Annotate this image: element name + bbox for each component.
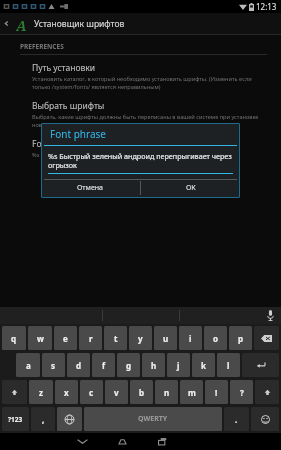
- button[interactable]: f: [92, 353, 115, 377]
- staticText: w: [37, 333, 44, 344]
- staticText: k: [201, 360, 206, 371]
- staticText: r: [89, 333, 93, 344]
- button[interactable]: Back: [0, 13, 13, 34]
- staticText: Выбрать, какие шрифты должны быть перепи…: [32, 113, 265, 129]
- staticText: z: [39, 387, 43, 398]
- staticText: c: [89, 387, 94, 398]
- button[interactable]: n: [155, 380, 178, 404]
- staticText: A: [16, 16, 27, 32]
- staticText: l: [227, 360, 230, 371]
- button[interactable]: u: [154, 326, 177, 350]
- button[interactable]: e: [54, 326, 77, 350]
- staticText: o: [213, 333, 218, 344]
- staticText: p: [238, 333, 244, 344]
- staticText: %s Быстрый зеленый андроид перепрыгивает…: [48, 151, 233, 171]
- button[interactable]: i: [179, 326, 202, 350]
- button[interactable]: Hide keyboard: [62, 433, 102, 450]
- staticText: b: [139, 387, 145, 398]
- button[interactable]: Backspace: [254, 326, 279, 350]
- staticText: e: [63, 333, 68, 344]
- button[interactable]: Отмена: [41, 180, 140, 196]
- button[interactable]: x: [55, 380, 78, 404]
- button[interactable]: Enter: [242, 353, 279, 377]
- button[interactable]: QWERTY: [84, 407, 222, 431]
- button[interactable]: z: [29, 380, 53, 404]
- staticText: QWERTY: [138, 414, 168, 424]
- button[interactable]: c: [80, 380, 103, 404]
- button[interactable]: m: [180, 380, 203, 404]
- button[interactable]: Back: [0, 13, 281, 34]
- staticText: Font phrase: [50, 127, 106, 141]
- staticText: x: [64, 387, 69, 398]
- button[interactable]: [180, 307, 281, 324]
- button[interactable]: g: [117, 353, 140, 377]
- staticText: ?123: [8, 415, 23, 424]
- staticText: Путь установки: [32, 62, 96, 74]
- staticText: m: [188, 387, 196, 398]
- staticText: y: [138, 333, 143, 344]
- staticText: %s Быстрый зеленый андроид перепрыгивает…: [32, 151, 199, 159]
- button[interactable]: r: [79, 326, 102, 350]
- staticText: Выбрать шрифты: [32, 100, 105, 112]
- button[interactable]: l: [217, 353, 240, 377]
- staticText: v: [114, 387, 119, 398]
- staticText: Font phrase: [32, 138, 80, 150]
- button[interactable]: Выбрать шрифты: [0, 99, 281, 130]
- button[interactable]: v: [105, 380, 128, 404]
- button[interactable]: Home: [102, 433, 142, 450]
- button[interactable]: o: [204, 326, 227, 350]
- staticText: u: [163, 333, 169, 344]
- staticText: j: [177, 360, 180, 371]
- button[interactable]: Font phrase: [0, 137, 281, 160]
- button[interactable]: k: [192, 353, 215, 377]
- staticText: ,: [42, 414, 45, 425]
- staticText: Установщик шрифтов: [34, 18, 125, 30]
- staticText: 12:13: [256, 1, 277, 12]
- button[interactable]: Recent apps: [142, 433, 182, 450]
- button[interactable]: d: [67, 353, 90, 377]
- staticText: h: [151, 360, 157, 371]
- staticText: ?: [240, 387, 244, 398]
- button[interactable]: w: [28, 326, 52, 350]
- button[interactable]: Voice input: [259, 307, 281, 324]
- button[interactable]: Shift: [2, 380, 27, 404]
- staticText: d: [76, 360, 82, 371]
- staticText: a: [26, 360, 31, 371]
- button[interactable]: s: [42, 353, 65, 377]
- staticText: s: [51, 360, 56, 371]
- button[interactable]: Путь установки: [0, 61, 281, 92]
- button[interactable]: Shift: [255, 380, 279, 404]
- button[interactable]: %s Быстрый зеленый андроид перепрыгивает…: [48, 151, 233, 174]
- staticText: i: [189, 333, 192, 344]
- button[interactable]: ?: [230, 380, 253, 404]
- button[interactable]: p: [229, 326, 252, 350]
- button[interactable]: y: [129, 326, 152, 350]
- staticText: q: [11, 333, 17, 344]
- staticText: !: [215, 387, 218, 398]
- button[interactable]: ОК: [141, 180, 240, 196]
- button[interactable]: ,: [31, 407, 55, 431]
- button[interactable]: Language: [57, 407, 82, 431]
- staticText: t: [114, 333, 118, 344]
- button[interactable]: h: [142, 353, 165, 377]
- staticText: Установить каталог, в который необходимо…: [32, 75, 265, 91]
- staticText: ОК: [186, 183, 196, 193]
- button[interactable]: !: [205, 380, 228, 404]
- button[interactable]: ?123: [2, 407, 29, 431]
- button[interactable]: b: [130, 380, 153, 404]
- button[interactable]: a: [16, 353, 40, 377]
- staticText: f: [102, 360, 106, 371]
- staticText: .: [235, 414, 238, 425]
- button[interactable]: t: [104, 326, 127, 350]
- button[interactable]: .: [224, 407, 249, 431]
- staticText: g: [126, 360, 132, 371]
- button[interactable]: Emoji: [251, 407, 279, 431]
- staticText: PREFERENCES: [20, 42, 64, 51]
- staticText: n: [164, 387, 170, 398]
- button[interactable]: j: [167, 353, 190, 377]
- staticText: Отмена: [77, 183, 104, 193]
- button[interactable]: q: [2, 326, 26, 350]
